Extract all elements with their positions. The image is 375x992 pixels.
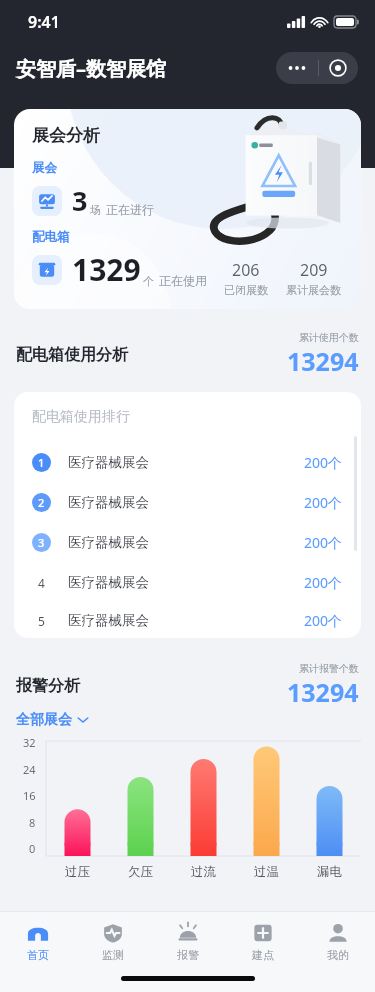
- staticText: 过流: [191, 864, 216, 880]
- staticText: 场: [90, 203, 101, 217]
- button[interactable]: 2: [14, 482, 361, 522]
- staticText: 1: [38, 455, 45, 470]
- staticText: 展会分析: [32, 125, 100, 146]
- staticText: 8: [29, 815, 36, 830]
- staticText: 医疗器械展会: [68, 454, 149, 471]
- staticText: 206: [232, 259, 260, 281]
- staticText: 监测: [102, 948, 124, 962]
- staticText: 报警分析: [16, 676, 80, 696]
- staticText: 正在进行: [106, 202, 154, 217]
- button[interactable]: 我的: [300, 912, 375, 970]
- button[interactable]: 建点: [225, 912, 300, 970]
- staticText: 3: [38, 535, 45, 550]
- staticText: 医疗器械展会: [68, 574, 149, 591]
- staticText: 个: [143, 274, 154, 288]
- staticText: 200个: [304, 611, 343, 630]
- staticText: 展会: [32, 160, 57, 176]
- button[interactable]: 全部展会: [16, 711, 89, 729]
- staticText: 建点: [252, 948, 274, 962]
- staticText: 32: [23, 735, 36, 750]
- staticText: 我的: [327, 948, 349, 962]
- staticText: 13294: [287, 675, 359, 709]
- staticText: 200个: [304, 493, 343, 512]
- staticText: 0: [29, 841, 36, 856]
- staticText: 首页: [27, 948, 49, 962]
- staticText: 209: [300, 259, 328, 281]
- staticText: 24: [23, 762, 36, 777]
- button[interactable]: 更多与胶囊菜单: [276, 52, 358, 84]
- staticText: 医疗器械展会: [68, 494, 149, 511]
- staticText: 200个: [304, 453, 343, 472]
- staticText: 累计报警个数: [299, 662, 359, 675]
- staticText: 累计展会数: [286, 283, 341, 297]
- staticText: 正在使用: [159, 273, 207, 288]
- staticText: 9:41: [28, 11, 60, 33]
- staticText: 配电箱: [32, 229, 70, 245]
- staticText: 16: [23, 788, 36, 803]
- staticText: 报警: [177, 948, 199, 962]
- staticText: 过压: [65, 864, 90, 880]
- button[interactable]: 1: [14, 442, 361, 482]
- staticText: 5: [38, 613, 45, 629]
- staticText: 配电箱使用排行: [32, 408, 130, 426]
- staticText: 4: [38, 575, 45, 591]
- button[interactable]: 展会分析: [14, 109, 361, 309]
- button[interactable]: 首页: [0, 912, 75, 970]
- button[interactable]: 4: [14, 562, 361, 602]
- button[interactable]: 3: [14, 522, 361, 562]
- staticText: 安智盾–数智展馆: [16, 55, 166, 82]
- staticText: 已闭展数: [224, 283, 268, 297]
- staticText: 欠压: [128, 864, 153, 880]
- staticText: 3: [72, 182, 88, 219]
- staticText: 1329: [72, 249, 141, 290]
- staticText: 13294: [287, 344, 359, 378]
- staticText: 漏电: [317, 864, 342, 880]
- button[interactable]: 报警: [150, 912, 225, 970]
- staticText: 过温: [254, 864, 279, 880]
- staticText: 配电箱使用分析: [16, 345, 128, 365]
- button[interactable]: 5: [14, 602, 361, 638]
- staticText: 2: [38, 495, 45, 510]
- staticText: 医疗器械展会: [68, 612, 149, 629]
- button[interactable]: 监测: [75, 912, 150, 970]
- staticText: 累计使用个数: [299, 331, 359, 344]
- staticText: 全部展会: [16, 711, 72, 729]
- staticText: 200个: [304, 573, 343, 592]
- staticText: 200个: [304, 533, 343, 552]
- staticText: 医疗器械展会: [68, 534, 149, 551]
